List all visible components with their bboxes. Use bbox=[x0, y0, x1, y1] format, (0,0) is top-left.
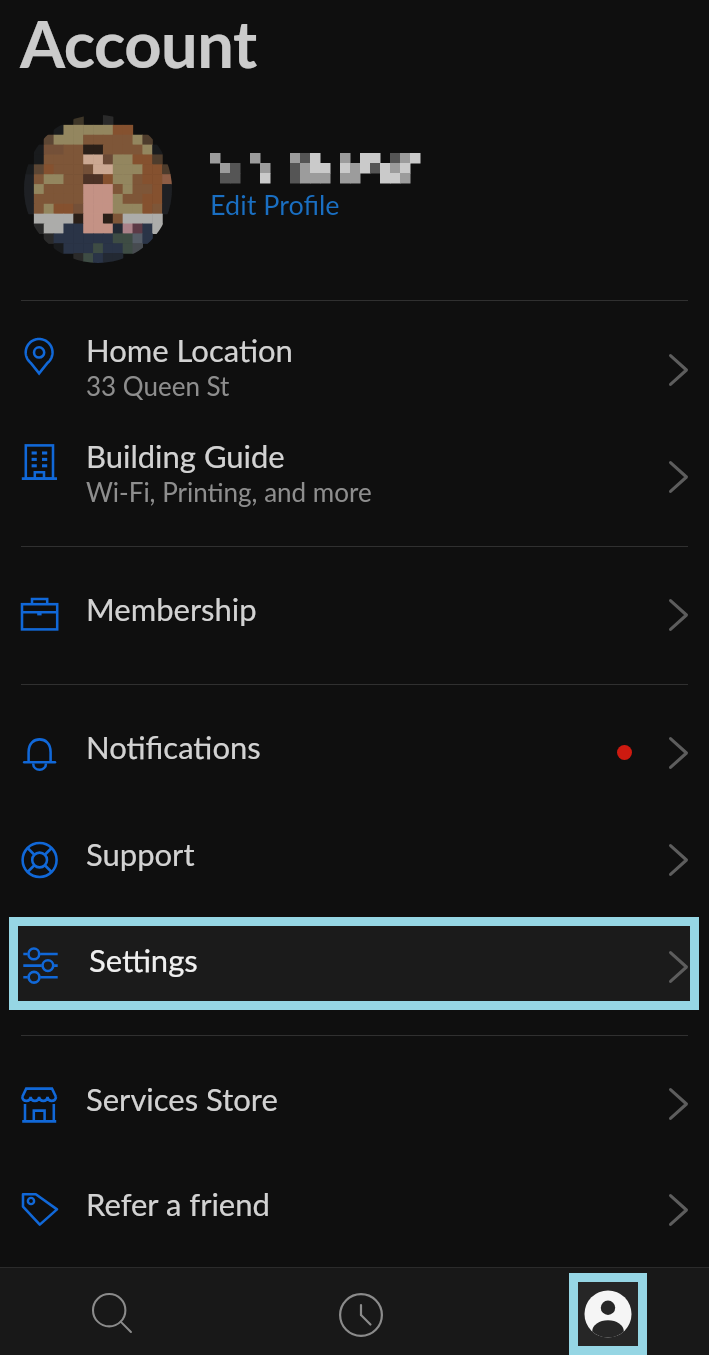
button[interactable]: Refer a friend bbox=[0, 1160, 709, 1246]
staticText: Wi-Fi, Printing, and more bbox=[86, 476, 372, 507]
button[interactable]: Membership bbox=[0, 565, 709, 651]
staticText: Settings bbox=[89, 941, 198, 978]
button[interactable]: History bbox=[325, 1275, 397, 1347]
button[interactable]: Home Location bbox=[0, 306, 709, 406]
staticText: Membership bbox=[86, 590, 257, 627]
staticText: Services Store bbox=[86, 1080, 278, 1117]
button[interactable]: Building Guide bbox=[0, 412, 709, 512]
staticText: Home Location bbox=[86, 331, 293, 368]
staticText: Account bbox=[20, 4, 257, 82]
button[interactable]: Edit Profile bbox=[0, 104, 709, 279]
button[interactable]: Notifications bbox=[0, 703, 709, 789]
button[interactable]: Support bbox=[0, 810, 709, 896]
button[interactable]: Account bbox=[578, 1282, 638, 1346]
button[interactable]: Settings bbox=[18, 926, 690, 1001]
button[interactable]: Search bbox=[75, 1275, 147, 1347]
button[interactable]: Services Store bbox=[0, 1055, 709, 1141]
staticText: Notifications bbox=[86, 728, 261, 765]
staticText: 33 Queen St bbox=[86, 370, 230, 401]
staticText: Building Guide bbox=[86, 437, 285, 474]
staticText: Edit Profile bbox=[210, 188, 340, 220]
staticText: Support bbox=[86, 835, 195, 872]
staticText: Refer a friend bbox=[86, 1185, 270, 1222]
